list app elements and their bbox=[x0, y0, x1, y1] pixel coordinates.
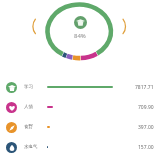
other: Study category bbox=[74, 16, 87, 29]
staticText: 人情 bbox=[24, 104, 33, 110]
staticText: 157.00 bbox=[138, 144, 154, 151]
button[interactable]: 学习 bbox=[0, 77, 160, 97]
button[interactable]: 人情 bbox=[0, 97, 160, 117]
staticText: 水电气 bbox=[24, 144, 38, 150]
staticText: 397.00 bbox=[138, 124, 154, 131]
staticText: 7817.71 bbox=[135, 84, 154, 91]
staticText: 学习 bbox=[24, 84, 33, 90]
staticText: 709.90 bbox=[138, 104, 154, 111]
button[interactable]: 食野 bbox=[0, 117, 160, 137]
button[interactable]: 水电气 bbox=[0, 137, 160, 157]
staticText: 84% bbox=[74, 32, 86, 40]
staticText: 食野 bbox=[24, 124, 33, 130]
